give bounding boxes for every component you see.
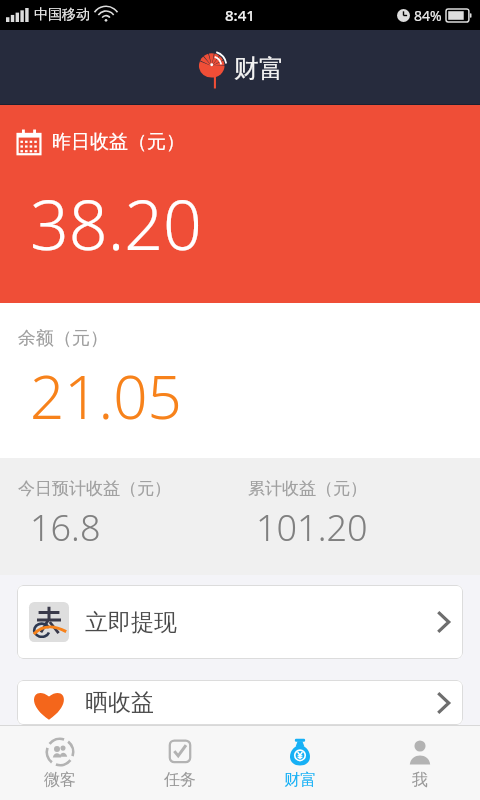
staticText: 立即提现 [85,608,177,637]
staticText: 昨日收益（元） [52,130,185,154]
staticText: 21.05 [30,355,182,437]
staticText: 财富 [234,53,284,84]
staticText: 84% [414,6,442,25]
button[interactable]: 任务 [120,726,240,800]
staticText: 微客 [44,770,76,790]
staticText: 余额（元） [18,327,108,350]
button[interactable]: 微客 [0,726,120,800]
button[interactable]: 立即提现 [17,585,463,659]
staticText: 今日预计收益（元） [18,478,171,499]
staticText: 我 [412,770,428,790]
button[interactable]: 我 [360,726,480,800]
staticText: 累计收益（元） [248,478,367,499]
staticText: 中国移动 [34,6,90,24]
staticText: 任务 [164,770,196,790]
button[interactable]: 财富 [240,726,360,800]
staticText: 38.20 [30,177,202,270]
staticText: 101.20 [256,503,368,552]
staticText: 晒收益 [85,688,154,717]
button[interactable]: 晒收益 [17,680,463,725]
staticText: 财富 [284,770,316,790]
staticText: 16.8 [30,503,101,552]
staticText: 8:41 [225,5,255,25]
